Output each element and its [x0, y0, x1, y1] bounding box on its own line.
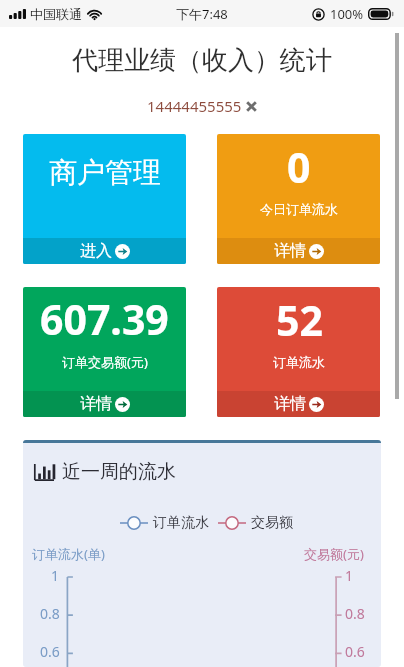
staticText: 订单流水: [273, 354, 325, 370]
staticText: 近一周的流水: [62, 460, 176, 484]
button[interactable]: 52: [217, 287, 380, 417]
button[interactable]: 0: [217, 134, 380, 264]
staticText: 0.8: [40, 604, 60, 623]
staticText: 0.6: [345, 642, 365, 661]
staticText: 订单流水: [153, 514, 209, 532]
staticText: 详情: [274, 241, 306, 261]
staticText: 14444455555: [147, 96, 242, 116]
staticText: 0.8: [345, 604, 365, 623]
staticText: 今日订单流水: [260, 201, 338, 217]
staticText: 100%: [330, 5, 364, 23]
staticText: 1: [51, 566, 60, 585]
staticText: 交易额(元): [304, 545, 364, 563]
staticText: 商户管理: [49, 155, 161, 190]
button[interactable]: Clear phone number: [245, 100, 258, 113]
staticText: 下午7:48: [176, 5, 228, 23]
staticText: 1: [345, 566, 354, 585]
staticText: 订单交易额(元): [62, 353, 148, 371]
button[interactable]: 商户管理: [23, 134, 186, 264]
staticText: 详情: [80, 394, 112, 414]
staticText: 607.39: [40, 291, 169, 347]
staticText: 代理业绩（收入）统计: [0, 44, 404, 77]
staticText: 进入: [80, 241, 112, 261]
staticText: 中国联通: [30, 6, 82, 22]
staticText: 0: [287, 139, 311, 195]
staticText: 52: [276, 292, 323, 348]
staticText: 详情: [274, 394, 306, 414]
button[interactable]: 607.39: [23, 287, 186, 417]
staticText: 订单流水(单): [32, 545, 105, 563]
staticText: 交易额: [251, 514, 293, 532]
staticText: 0.6: [40, 642, 60, 661]
